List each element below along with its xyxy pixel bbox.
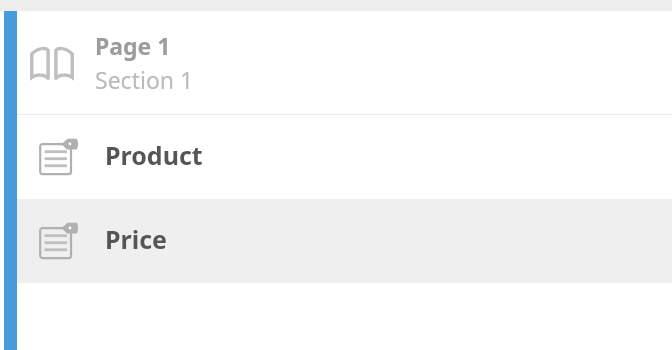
button[interactable]: Product bbox=[17, 115, 672, 199]
staticText: Price bbox=[105, 222, 168, 256]
other: Page bbox=[29, 43, 75, 83]
staticText: Product bbox=[105, 138, 203, 172]
staticText: Page 1 bbox=[95, 30, 171, 61]
staticText: Section 1 bbox=[95, 64, 194, 95]
button[interactable]: Price bbox=[17, 199, 672, 283]
button[interactable]: Page bbox=[17, 11, 672, 114]
